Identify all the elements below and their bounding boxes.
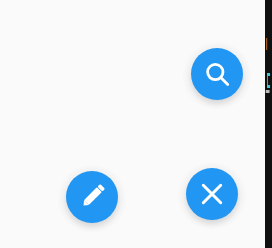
button[interactable]: Edit: [57, 162, 127, 232]
button[interactable]: Close: [177, 159, 247, 229]
button[interactable]: Search: [182, 39, 252, 109]
